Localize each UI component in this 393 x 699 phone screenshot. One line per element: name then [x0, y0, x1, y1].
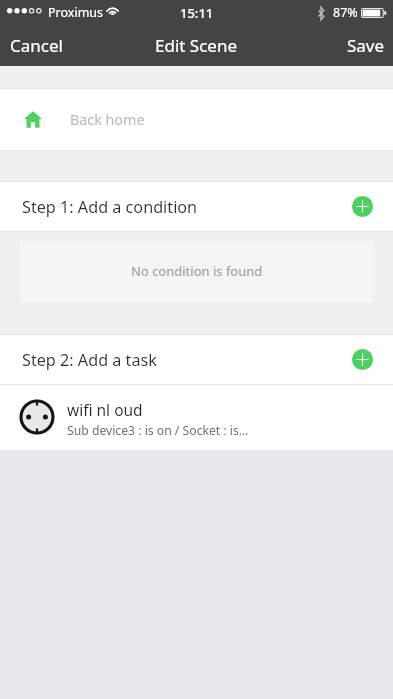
- staticText: Step 2: Add a task: [22, 349, 157, 371]
- button[interactable]: Add: [352, 196, 373, 217]
- staticText: Cancel: [10, 34, 63, 57]
- button[interactable]: Add: [352, 349, 373, 370]
- staticText: 87%: [333, 4, 358, 21]
- staticText: wifi nl oud: [67, 399, 143, 420]
- staticText: No condition is found: [131, 262, 263, 280]
- button[interactable]: Cancel: [0, 29, 73, 64]
- button[interactable]: wifi nl oud: [0, 385, 393, 450]
- staticText: Proximus: [48, 4, 104, 21]
- staticText: Back home: [70, 110, 145, 129]
- staticText: Sub device3 : is on / Socket : is…: [67, 422, 249, 439]
- button[interactable]: Step 1: Add a condition: [0, 182, 393, 231]
- button[interactable]: Step 2: Add a task: [0, 335, 393, 384]
- staticText: Step 1: Add a condition: [22, 196, 198, 218]
- staticText: Edit Scene: [155, 34, 238, 57]
- staticText: 15:11: [180, 4, 214, 22]
- button[interactable]: Back home: [0, 89, 393, 150]
- button[interactable]: Save: [337, 29, 393, 64]
- staticText: Save: [347, 34, 385, 57]
